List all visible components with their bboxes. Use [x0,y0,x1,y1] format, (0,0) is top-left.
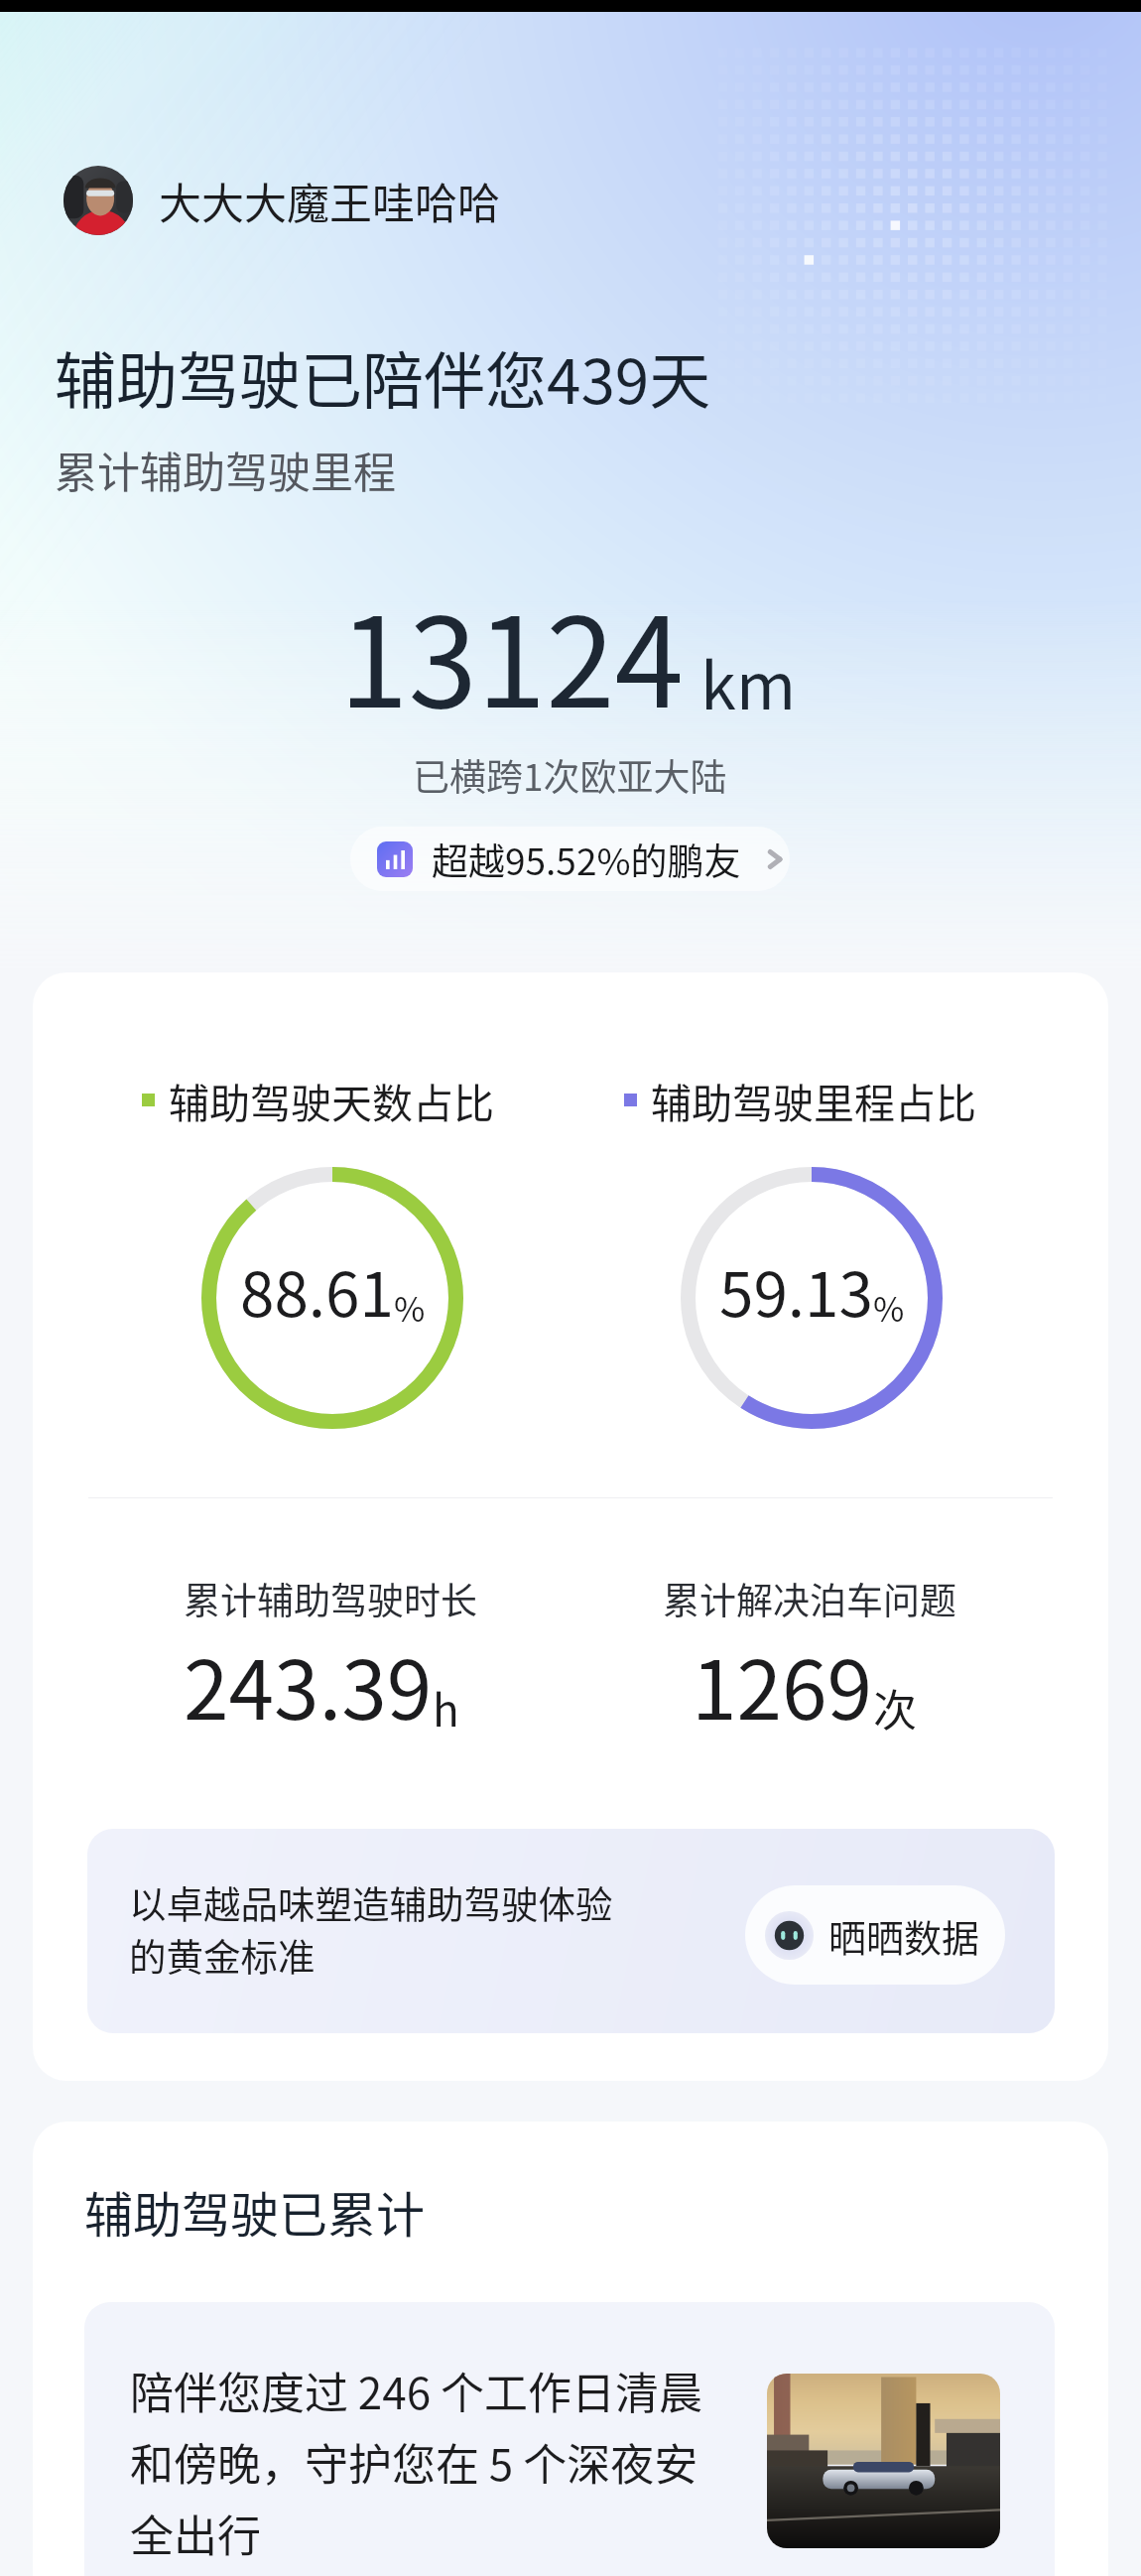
staticText: 1269 [692,1625,873,1743]
staticText: 辅助驾驶已陪伴您439天 [55,332,711,422]
staticText: 以卓越品味塑造辅助驾驶体验 [129,1874,613,1928]
button[interactable]: 晒晒数据 [745,1885,1005,1985]
button[interactable]: 超越95.52%的鹏友 [350,827,790,891]
staticText: 和傍晚，守护您在 5 个深夜安 [130,2430,698,2494]
staticText: % [394,1283,426,1332]
staticText: 辅助驾驶里程占比 [651,1071,976,1129]
staticText: 辅助驾驶已累计 [84,2176,426,2247]
staticText: % [873,1283,905,1332]
staticText: 晒晒数据 [828,1908,980,1963]
staticText: km [700,635,797,728]
staticText: 陪伴您度过 246 个工作日清晨 [130,2359,702,2422]
staticText: 全出行 [130,2502,261,2565]
staticText: h [433,1676,459,1739]
staticText: 累计解决泊车问题 [663,1572,956,1625]
staticText: 59.13 [719,1245,873,1335]
staticText: 次 [873,1676,917,1739]
staticText: 大大大魔王哇哈哈 [159,170,500,231]
staticText: 超越95.52%的鹏友 [432,833,741,886]
staticText: 辅助驾驶天数占比 [169,1071,494,1129]
staticText: 已横跨1次欧亚大陆 [413,748,727,802]
button[interactable]: Profile [63,166,500,235]
staticText: 243.39 [184,1625,433,1743]
staticText: 累计辅助驾驶里程 [55,439,396,500]
staticText: 累计辅助驾驶时长 [184,1572,477,1625]
staticText: 13124 [339,564,684,743]
staticText: 88.61 [240,1245,394,1335]
staticText: 的黄金标准 [129,1927,316,1981]
